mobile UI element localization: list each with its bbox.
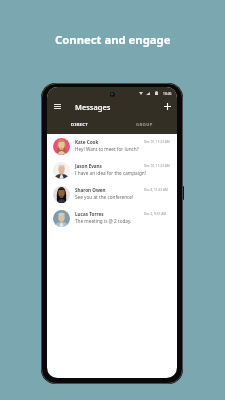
staticText: Dec 15, 11:23 AM bbox=[144, 140, 170, 144]
staticText: Dec 10, 11:23 AM bbox=[144, 164, 170, 168]
staticText: Dec 3, 9:57 AM bbox=[144, 212, 167, 216]
button[interactable]: Menu bbox=[51, 100, 64, 113]
button[interactable]: DIRECT bbox=[47, 119, 112, 130]
staticText: 18:26 bbox=[163, 91, 172, 95]
staticText: I have an idea for the campaign! bbox=[75, 170, 146, 176]
button[interactable]: Lucas Torres bbox=[47, 206, 177, 230]
staticText: The meeting is @ 2 today. bbox=[75, 218, 132, 224]
staticText: Hey! Want to meet for lunch? bbox=[75, 146, 139, 152]
button[interactable]: New message bbox=[161, 100, 174, 113]
button[interactable]: Sharon Owen bbox=[47, 182, 177, 206]
button[interactable]: Jason Evans bbox=[47, 158, 177, 182]
button[interactable]: GROUP bbox=[112, 119, 177, 130]
staticText: Dec 8, 11:23 AM bbox=[144, 188, 168, 192]
button[interactable]: Kate Cook bbox=[47, 134, 177, 158]
staticText: Lucas Torres bbox=[75, 211, 104, 217]
staticText: Sharon Owen bbox=[75, 187, 106, 193]
staticText: See you at the conference! bbox=[75, 194, 134, 200]
staticText: Jason Evans bbox=[75, 163, 102, 169]
staticText: Messages bbox=[75, 102, 111, 112]
staticText: Connect and engage bbox=[55, 32, 171, 47]
staticText: Kate Cook bbox=[75, 139, 99, 145]
staticText: GROUP bbox=[136, 122, 153, 128]
staticText: DIRECT bbox=[71, 122, 88, 128]
